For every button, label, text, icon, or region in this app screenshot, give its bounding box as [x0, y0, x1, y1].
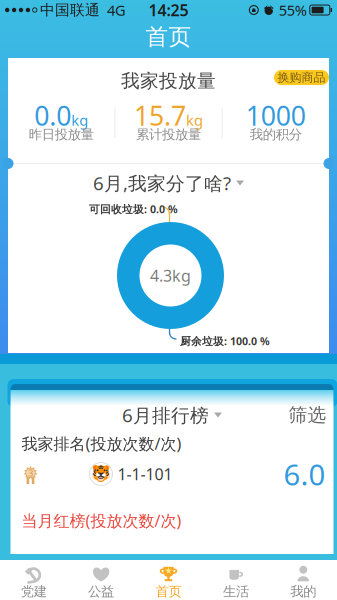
button[interactable]: 我的 — [270, 560, 337, 600]
staticText: 6月排行榜 — [122, 403, 209, 427]
staticText: 首页 — [155, 583, 181, 600]
staticText: 55% — [279, 0, 307, 20]
staticText: 3 — [28, 467, 33, 479]
button[interactable]: 换购商品 — [274, 70, 329, 85]
staticText: 公益 — [88, 583, 114, 600]
staticText: 6.0 — [283, 454, 325, 493]
staticText: 1-1-101 — [117, 463, 172, 485]
button[interactable]: 6月排行榜 — [10, 406, 333, 424]
staticText: 1000 — [246, 98, 306, 133]
staticText: 中国联通 — [40, 1, 100, 19]
button[interactable]: 筛选 — [288, 406, 326, 424]
staticText: kg — [186, 110, 203, 130]
staticText: 我家投放量 — [121, 69, 216, 92]
staticText: 🐯 — [91, 465, 111, 483]
staticText: 累计投放量 — [136, 126, 201, 143]
button[interactable]: 3 — [10, 452, 333, 496]
staticText: 筛选 — [288, 403, 326, 426]
button[interactable]: 党建 — [0, 560, 67, 600]
staticText: 党建 — [21, 583, 47, 600]
staticText: 当月红榜(投放次数/次) — [21, 510, 181, 531]
staticText: 0.0 — [34, 98, 71, 133]
button[interactable]: 6月,我家分了啥? — [8, 173, 329, 193]
staticText: 换购商品 — [277, 70, 325, 85]
staticText: 4G — [107, 0, 126, 20]
button[interactable]: 首页 — [135, 560, 202, 600]
staticText: 我的 — [290, 583, 316, 600]
staticText: 首页 — [145, 23, 191, 51]
staticText: 厨余垃圾: 100.0 % — [180, 334, 270, 348]
staticText: 我家排名(投放次数/次) — [21, 433, 181, 454]
staticText: 我的积分 — [250, 126, 302, 143]
staticText: 6月,我家分了啥? — [93, 171, 231, 195]
staticText: 15.7 — [134, 98, 186, 133]
button[interactable]: 生活 — [202, 560, 270, 600]
staticText: 昨日投放量 — [29, 126, 94, 143]
staticText: kg — [71, 110, 88, 130]
staticText: 4.3kg — [150, 265, 191, 286]
button[interactable]: 公益 — [67, 560, 135, 600]
staticText: 可回收垃圾: 0.0 % — [89, 202, 178, 216]
staticText: 生活 — [223, 583, 249, 600]
staticText: 14:25 — [148, 0, 188, 21]
